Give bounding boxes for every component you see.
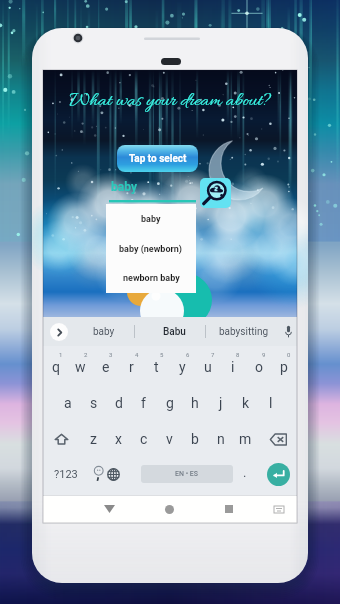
staticText: 1 [59, 351, 63, 358]
staticText: m [239, 431, 252, 447]
button[interactable]: t [144, 354, 169, 380]
button[interactable]: q [43, 354, 68, 380]
button[interactable]: Enter [267, 463, 290, 486]
staticText: baby [141, 214, 161, 225]
staticText: Tap to select [129, 153, 187, 165]
button[interactable]: p [271, 354, 296, 380]
staticText: baby [111, 180, 137, 194]
staticText: 2 [84, 351, 88, 358]
button[interactable]: Search dream meaning [200, 178, 231, 208]
staticText: i [231, 359, 235, 375]
button[interactable]: baby [111, 180, 137, 194]
staticText: o [255, 359, 263, 375]
button[interactable]: n [208, 426, 233, 452]
staticText: r [129, 359, 134, 375]
staticText: 5 [160, 351, 164, 358]
button[interactable]: Recents [207, 495, 251, 523]
button[interactable]: . [235, 459, 255, 485]
staticText: 0 [287, 351, 291, 358]
staticText: newborn baby [123, 273, 180, 284]
button[interactable]: Voice input [277, 317, 299, 346]
button[interactable]: ?123 [45, 461, 87, 487]
staticText: y [179, 359, 186, 375]
button[interactable]: newborn baby [106, 264, 196, 293]
button[interactable]: w [68, 354, 93, 380]
button[interactable]: babysitting [216, 317, 272, 346]
staticText: e [102, 359, 110, 375]
staticText: baby [93, 326, 115, 338]
button[interactable]: baby [76, 317, 132, 346]
button[interactable]: EN • ES [141, 465, 233, 483]
staticText: h [191, 395, 199, 411]
button[interactable]: o [246, 354, 271, 380]
button[interactable]: Babu [146, 317, 202, 346]
staticText: What was your dream about? [69, 89, 272, 114]
button[interactable]: m [233, 426, 258, 452]
button[interactable]: v [157, 426, 182, 452]
staticText: ?123 [54, 468, 78, 481]
button[interactable]: f [131, 390, 156, 416]
button[interactable]: c [131, 426, 156, 452]
button[interactable]: baby (newborn) [106, 234, 196, 264]
staticText: 9 [262, 351, 266, 358]
staticText: n [217, 431, 225, 447]
staticText: Babu [163, 326, 186, 338]
staticText: d [115, 395, 123, 411]
button[interactable]: Shift [46, 426, 76, 452]
staticText: 8 [236, 351, 240, 358]
button[interactable]: i [220, 354, 245, 380]
button[interactable]: d [106, 390, 131, 416]
button[interactable]: a [55, 390, 80, 416]
button[interactable]: j [208, 390, 233, 416]
staticText: u [204, 359, 212, 375]
staticText: g [166, 395, 174, 411]
staticText: What was your dream about? [69, 89, 272, 114]
staticText: w [75, 359, 86, 375]
staticText: 6 [186, 351, 190, 358]
button[interactable]: z [81, 426, 106, 452]
staticText: x [115, 431, 122, 447]
staticText: t [154, 359, 159, 375]
staticText: . [243, 465, 247, 480]
button[interactable]: Tap to select [117, 145, 198, 172]
staticText: j [219, 395, 223, 411]
button[interactable]: More suggestions [50, 323, 68, 341]
staticText: 7 [211, 351, 215, 358]
button[interactable]: x [106, 426, 131, 452]
staticText: p [280, 359, 288, 375]
button[interactable]: g [157, 390, 182, 416]
staticText: a [64, 395, 72, 411]
button[interactable]: Emoji [88, 461, 108, 487]
button[interactable]: Change language [102, 461, 124, 487]
button[interactable]: Switch keyboard [263, 495, 295, 523]
button[interactable]: b [182, 426, 207, 452]
staticText: b [191, 431, 199, 447]
staticText: 4 [135, 351, 139, 358]
button[interactable]: h [182, 390, 207, 416]
staticText: c [140, 431, 148, 447]
button[interactable]: u [195, 354, 220, 380]
button[interactable]: l [258, 390, 283, 416]
staticText: EN • ES [175, 470, 199, 478]
button[interactable]: r [119, 354, 144, 380]
staticText: z [90, 431, 97, 447]
staticText: baby (newborn) [119, 244, 183, 255]
staticText: k [242, 395, 250, 411]
staticText: s [90, 395, 98, 411]
button[interactable]: baby [106, 204, 196, 234]
staticText: l [269, 395, 273, 411]
button[interactable]: Backspace [261, 426, 295, 452]
staticText: v [166, 431, 173, 447]
button[interactable]: Home [147, 495, 191, 523]
staticText: 3 [109, 351, 113, 358]
button[interactable]: Hide keyboard [87, 495, 131, 523]
button[interactable]: k [233, 390, 258, 416]
staticText: babysitting [219, 326, 269, 338]
button[interactable]: e [93, 354, 118, 380]
button[interactable]: s [81, 390, 106, 416]
button[interactable]: y [170, 354, 195, 380]
staticText: f [141, 395, 146, 411]
staticText: q [52, 359, 60, 375]
